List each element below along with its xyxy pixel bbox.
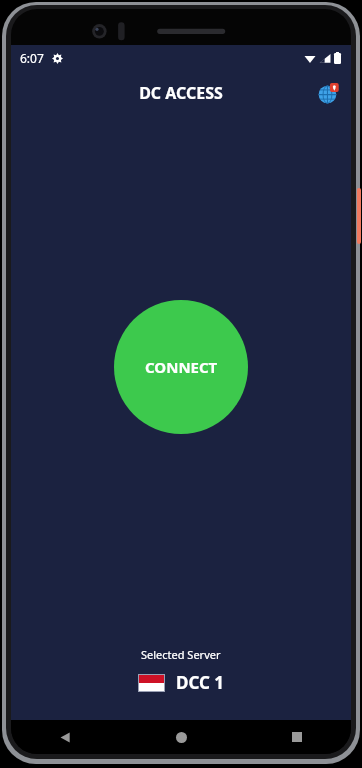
button[interactable]: Recent apps	[279, 720, 315, 754]
staticText: CONNECT	[145, 357, 218, 377]
staticText: DC ACCESS	[139, 82, 223, 104]
button[interactable]: Select server location	[313, 78, 343, 108]
staticText: DCC 1	[176, 671, 225, 694]
button[interactable]: Home	[163, 720, 199, 754]
button[interactable]: Back	[47, 720, 83, 754]
button[interactable]: Selected Server	[11, 647, 351, 720]
staticText: Selected Server	[141, 647, 221, 662]
staticText: 6:07	[20, 50, 44, 66]
button[interactable]: CONNECT	[114, 300, 248, 434]
